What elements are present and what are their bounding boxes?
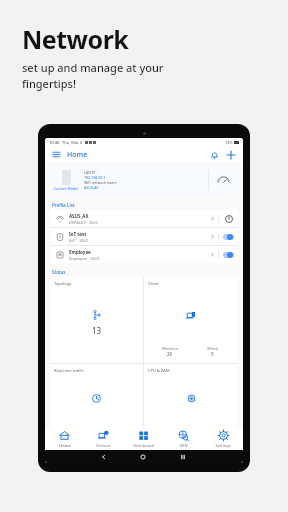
staticText: 13	[92, 325, 102, 336]
staticText: SDN	[179, 443, 188, 448]
staticText: Current Model	[54, 186, 78, 191]
button[interactable]: Real-time traffic	[50, 364, 143, 428]
staticText: set up and manage at your fingertips!	[22, 60, 164, 91]
staticText: Wired	[207, 346, 219, 351]
staticText: Home	[67, 150, 88, 160]
staticText: Employee	[69, 249, 91, 255]
button[interactable]: Settings	[203, 428, 243, 450]
staticText: ASUS_AX	[69, 213, 89, 219]
staticText: Home	[59, 443, 71, 448]
button[interactable]: Menu	[51, 149, 62, 160]
button[interactable]: ASUS_AX	[50, 210, 238, 227]
staticText: Status	[52, 269, 66, 275]
staticText: Dashboard	[133, 443, 154, 448]
button[interactable]: SDN	[163, 428, 203, 450]
staticText: Employee 2G:0	[69, 256, 100, 261]
button[interactable]: Home	[45, 428, 84, 450]
button[interactable]: Toggle	[223, 234, 234, 240]
button[interactable]: Dashboard	[123, 428, 163, 450]
staticText: Profile List	[52, 202, 75, 208]
button[interactable]: Notifications	[208, 149, 220, 161]
button[interactable]: Employee	[50, 246, 238, 263]
staticText: ASUS-AX	[84, 185, 99, 190]
staticText: Devices	[96, 443, 111, 448]
staticText: Network	[22, 22, 129, 56]
button[interactable]: Recents	[163, 450, 203, 463]
button[interactable]: IoT test	[50, 228, 238, 245]
staticText: 26	[167, 351, 173, 357]
staticText: Real-time traffic	[54, 368, 84, 373]
staticText: IoT 2G:2	[69, 238, 88, 243]
staticText: WiFi network name	[84, 180, 117, 185]
button[interactable]: Devices	[84, 428, 123, 450]
staticText: CPU & RAM	[148, 368, 170, 373]
staticText: DEFAULT 2G:5	[69, 220, 98, 225]
staticText: 10:40	[49, 140, 60, 145]
button[interactable]: Add	[225, 149, 237, 161]
staticText: LAN IP :	[84, 170, 99, 175]
button[interactable]: Power	[223, 213, 234, 224]
staticText: Settings	[215, 443, 231, 448]
staticText: 5	[211, 351, 214, 357]
staticText: Wireless	[162, 346, 178, 351]
staticText: 192.168.50.1	[84, 175, 106, 180]
button[interactable]: Toggle	[223, 252, 234, 258]
staticText: IoT test	[69, 231, 87, 237]
staticText: Thu, Mar 6	[62, 140, 83, 145]
button[interactable]: Current Model	[50, 165, 238, 195]
staticText: 74%	[225, 140, 233, 145]
staticText: Topology	[54, 281, 72, 286]
staticText: Client	[148, 281, 159, 286]
button[interactable]: Home	[123, 450, 163, 463]
button[interactable]: Topology	[50, 277, 143, 363]
button[interactable]: Client	[144, 277, 238, 363]
button[interactable]: CPU & RAM	[144, 364, 238, 428]
button[interactable]: Back	[84, 450, 123, 463]
